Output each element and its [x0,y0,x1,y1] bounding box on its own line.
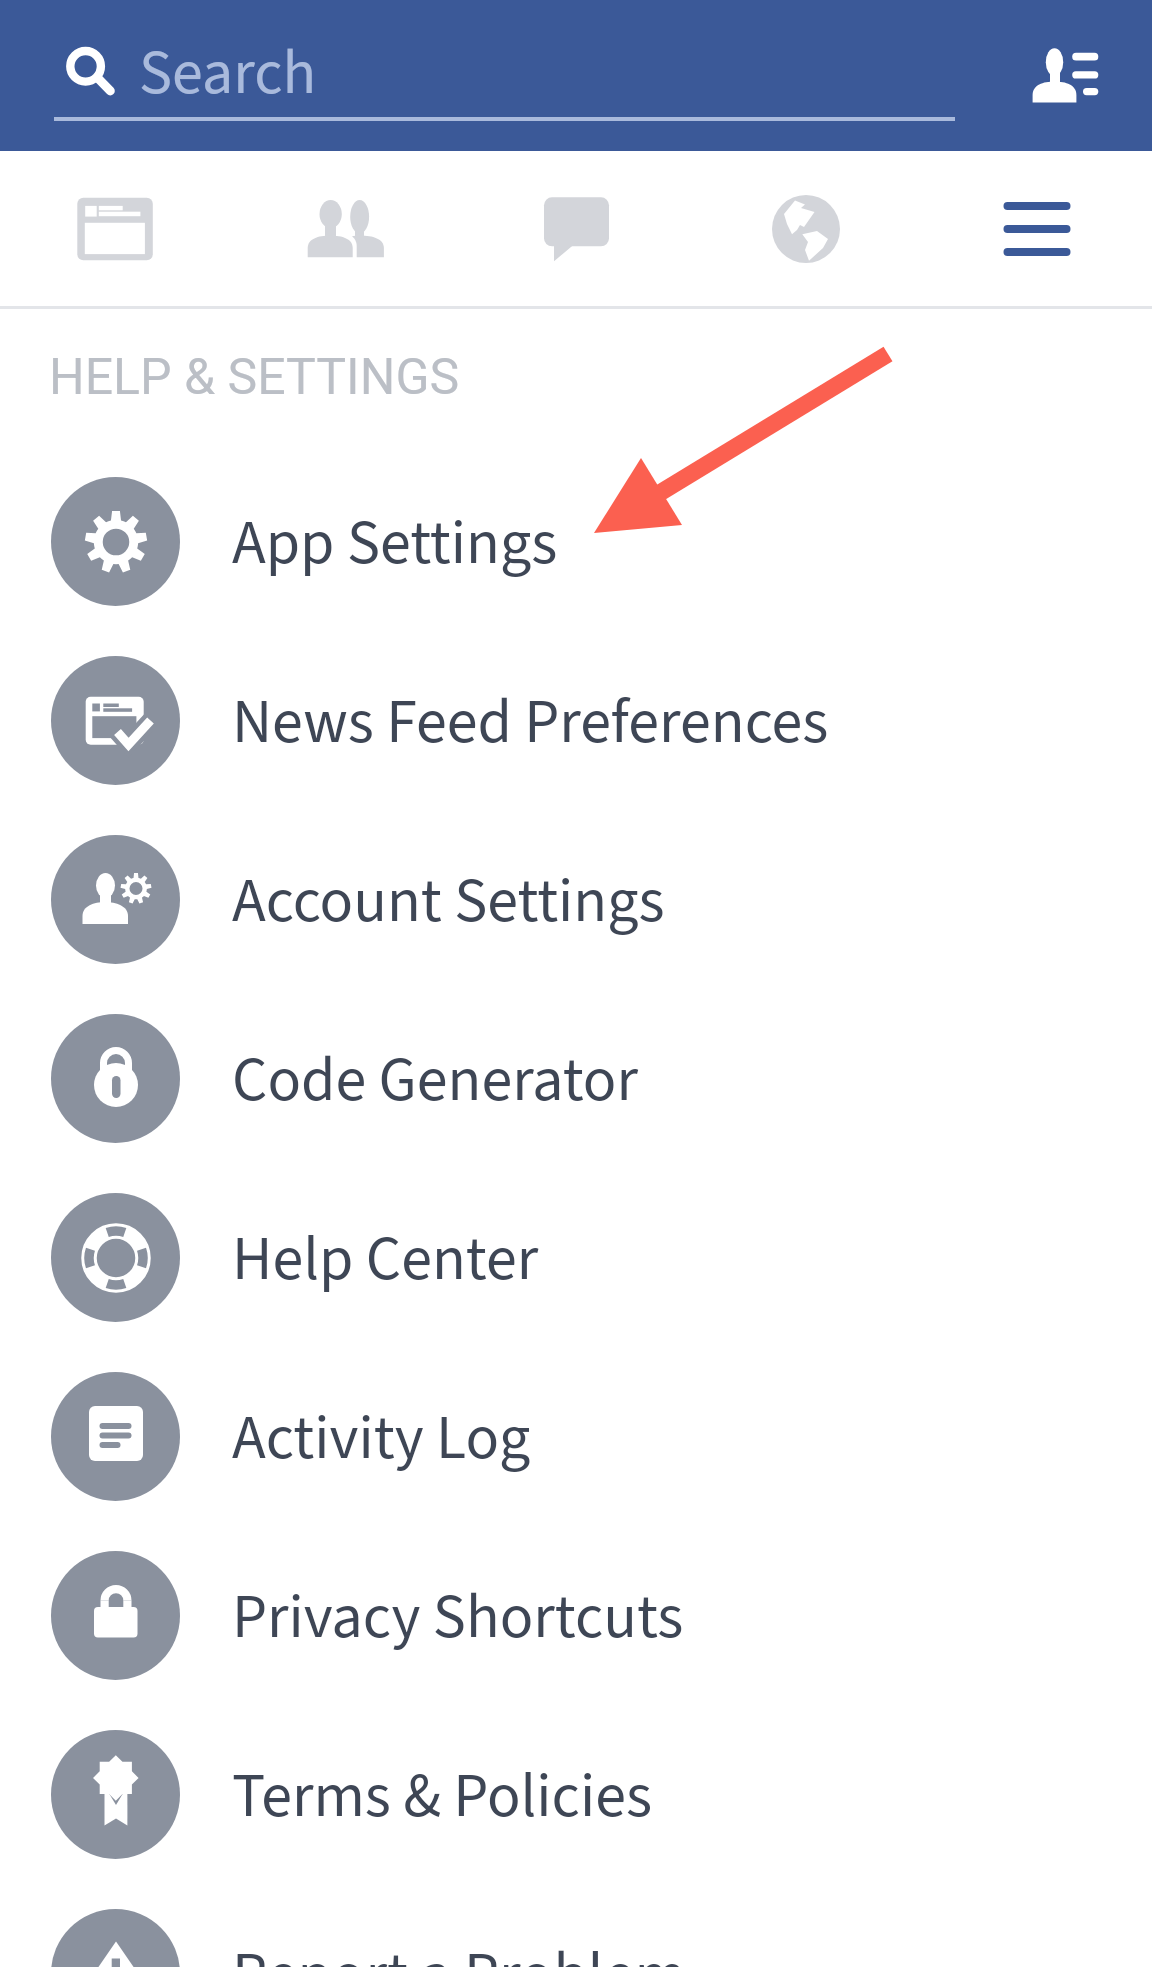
button[interactable]: Friend requests [230,151,460,306]
button[interactable]: Messages [461,151,691,306]
staticText: Report a Problem [232,1932,686,1967]
button[interactable]: App Settings [0,452,1152,631]
button[interactable]: Notifications [691,151,921,306]
button[interactable]: Menu [922,151,1152,306]
staticText: News Feed Preferences [232,679,829,767]
button[interactable]: Privacy Shortcuts [0,1526,1152,1705]
button[interactable]: Activity Log [0,1347,1152,1526]
button[interactable]: Help Center [0,1168,1152,1347]
staticText: Privacy Shortcuts [232,1574,684,1662]
staticText: Activity Log [232,1395,531,1483]
button[interactable]: Report a Problem [0,1884,1152,1967]
button[interactable]: Account Settings [0,810,1152,989]
button[interactable]: Friend requests [1022,37,1100,103]
button[interactable]: News Feed Preferences [0,631,1152,810]
button[interactable]: Search [54,0,955,151]
staticText: App Settings [232,500,558,588]
button[interactable]: Terms & Policies [0,1705,1152,1884]
staticText: Help Center [232,1216,539,1304]
staticText: Search [139,30,317,118]
staticText: HELP & SETTINGS [49,348,460,407]
staticText: Account Settings [232,858,665,946]
staticText: Terms & Policies [232,1753,652,1841]
button[interactable]: News Feed [0,151,230,306]
staticText: Code Generator [232,1037,638,1125]
button[interactable]: Code Generator [0,989,1152,1168]
